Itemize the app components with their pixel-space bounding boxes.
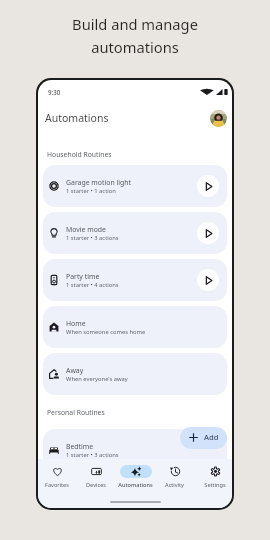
staticText: 9:30 xyxy=(48,88,61,96)
staticText: 1 starter • 1 action xyxy=(66,187,116,195)
staticText: 1 starter • 3 actions xyxy=(66,234,119,242)
button[interactable]: Play routine xyxy=(197,269,219,291)
staticText: Automations xyxy=(118,481,153,489)
staticText: Automations xyxy=(45,111,109,125)
staticText: Party time xyxy=(66,272,100,281)
button[interactable]: Movie mode xyxy=(43,212,227,254)
button[interactable]: Settings xyxy=(195,459,232,489)
staticText: Movie mode xyxy=(66,225,106,234)
button[interactable]: Devices xyxy=(76,459,115,489)
staticText: Devices xyxy=(86,481,106,489)
button[interactable]: Bedtime xyxy=(43,429,227,471)
staticText: Away xyxy=(66,366,84,375)
staticText: Add xyxy=(204,432,219,442)
staticText: Favorites xyxy=(45,481,69,489)
button[interactable]: Favorites xyxy=(38,459,76,489)
staticText: Bedtime xyxy=(66,442,94,451)
button[interactable]: Account xyxy=(210,110,227,127)
button[interactable]: Party time xyxy=(43,259,227,301)
staticText: When everyone's away xyxy=(66,375,128,383)
staticText: Garage motion light xyxy=(66,178,132,187)
staticText: Personal Routines xyxy=(47,408,105,417)
button[interactable]: Automations xyxy=(116,459,155,489)
button[interactable]: Away xyxy=(43,353,227,395)
staticText: 1 starter • 3 actions xyxy=(66,451,119,459)
button[interactable]: Activity xyxy=(155,459,194,489)
staticText: Home xyxy=(66,319,86,328)
staticText: Household Routines xyxy=(47,150,112,159)
button[interactable]: Garage motion light xyxy=(43,165,227,207)
button[interactable]: Add xyxy=(180,427,227,449)
staticText: When someone comes home xyxy=(66,328,146,336)
staticText: Build and manage xyxy=(72,14,198,34)
staticText: 1 starter • 4 actions xyxy=(66,281,119,289)
staticText: Settings xyxy=(204,481,226,489)
button[interactable]: Play routine xyxy=(197,175,219,197)
staticText: automations xyxy=(91,37,179,57)
button[interactable]: Home xyxy=(43,306,227,348)
button[interactable]: Play routine xyxy=(197,222,219,244)
staticText: Activity xyxy=(165,481,184,489)
